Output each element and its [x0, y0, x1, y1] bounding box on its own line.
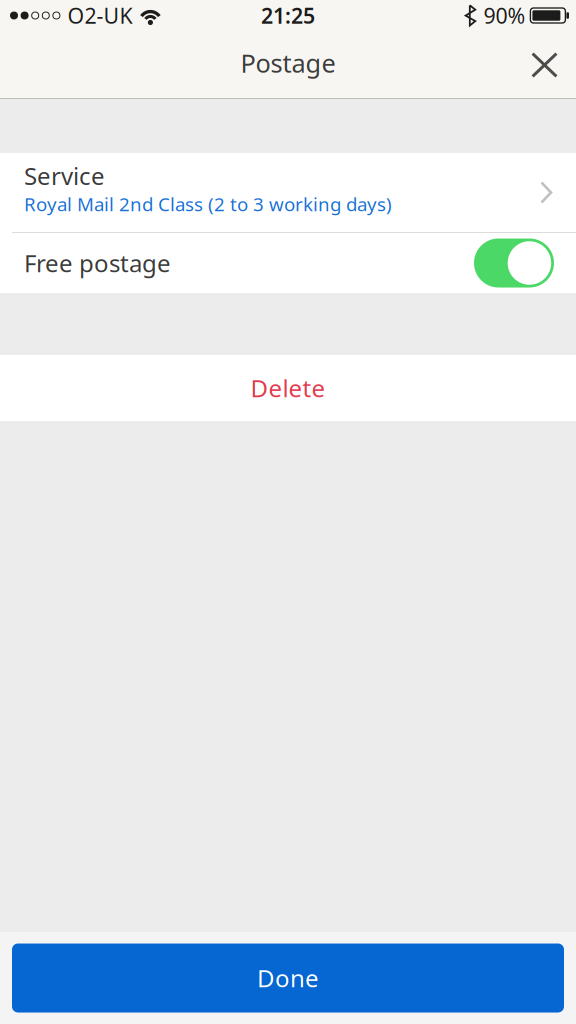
staticText: 90%	[483, 1, 525, 30]
button[interactable]: Close	[513, 40, 576, 98]
button[interactable]: Delete	[0, 355, 576, 421]
button[interactable]: Service	[0, 153, 576, 232]
staticText: 21:25	[261, 1, 315, 30]
button[interactable]: Free postage	[0, 233, 576, 293]
staticText: Delete	[250, 372, 325, 404]
button[interactable]: Done	[12, 943, 564, 1012]
staticText: Done	[257, 962, 319, 994]
staticText: Free postage	[24, 247, 171, 279]
staticText: Royal Mail 2nd Class (2 to 3 working day…	[24, 191, 392, 216]
staticText: Service	[24, 160, 105, 192]
staticText: O2-UK	[67, 1, 132, 30]
staticText: Postage	[240, 46, 335, 80]
